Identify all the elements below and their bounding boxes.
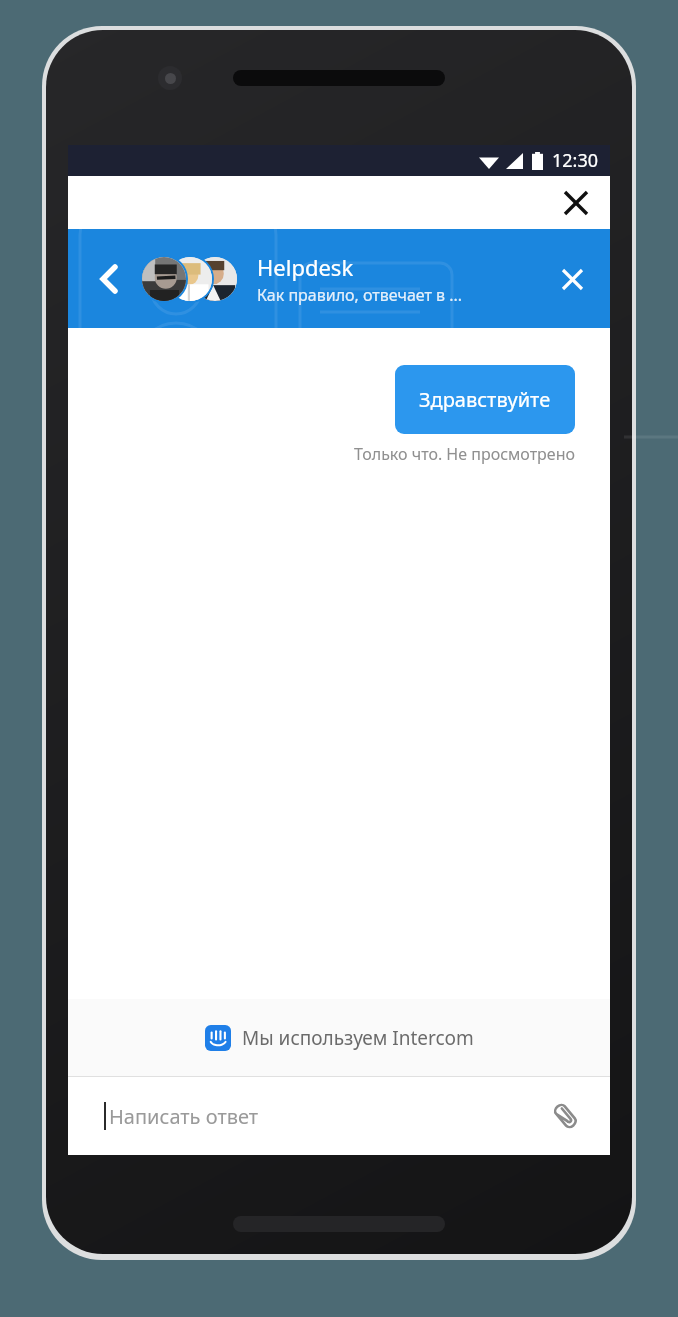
staticText: Как правило, отвечает в ... xyxy=(257,284,463,306)
button[interactable]: Написать ответ xyxy=(104,1102,542,1130)
button[interactable]: Close conversation xyxy=(550,257,594,301)
button[interactable]: Здравствуйте xyxy=(395,365,575,434)
staticText: Написать ответ xyxy=(109,1103,259,1130)
staticText: Helpdesk xyxy=(257,252,354,282)
button[interactable]: Attach file xyxy=(542,1093,588,1139)
staticText: Мы используем Intercom xyxy=(242,1025,474,1051)
button[interactable]: Back xyxy=(88,259,128,299)
button[interactable]: Close xyxy=(552,179,600,227)
staticText: Здравствуйте xyxy=(419,386,551,413)
staticText: Только что. Не просмотрено xyxy=(354,443,575,465)
staticText: 12:30 xyxy=(552,148,599,173)
button[interactable]: Мы используем Intercom xyxy=(68,999,610,1076)
